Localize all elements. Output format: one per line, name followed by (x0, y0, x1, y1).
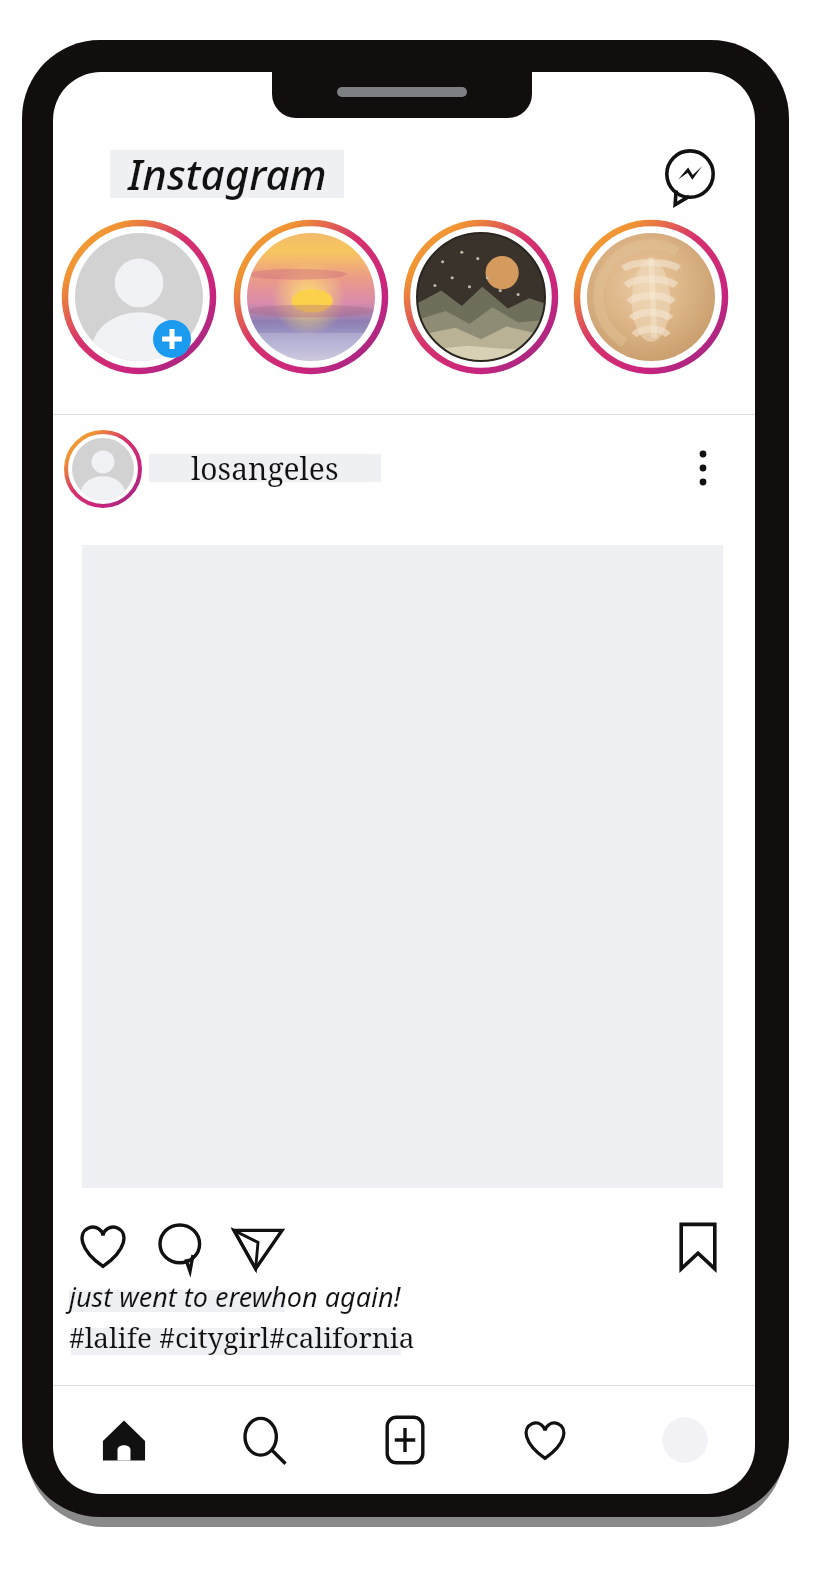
button[interactable]: Comment (151, 1216, 211, 1276)
button[interactable]: Instagram (110, 138, 344, 208)
button[interactable]: Story (574, 220, 728, 374)
button[interactable]: Share (228, 1216, 288, 1276)
button[interactable]: Profile (615, 1386, 755, 1494)
button[interactable]: Like (73, 1216, 133, 1276)
button[interactable]: Activity (475, 1386, 615, 1494)
button[interactable]: Search (194, 1386, 335, 1494)
button[interactable] (64, 430, 142, 508)
staticText: just went to erewhon again! (69, 1278, 401, 1315)
staticText: Instagram (128, 145, 327, 202)
button[interactable]: Story (62, 220, 216, 374)
staticText: losangeles (191, 448, 339, 489)
button[interactable]: Story (234, 220, 388, 374)
button[interactable]: Save (668, 1216, 728, 1276)
staticText: #lalife #citygirl#california (69, 1318, 415, 1356)
button[interactable]: Create (335, 1386, 475, 1494)
button[interactable]: Story (404, 220, 558, 374)
button[interactable]: Home (53, 1386, 194, 1494)
button[interactable]: losangeles (149, 446, 381, 490)
button[interactable]: More options (677, 442, 729, 494)
button[interactable]: Messenger (661, 148, 719, 206)
